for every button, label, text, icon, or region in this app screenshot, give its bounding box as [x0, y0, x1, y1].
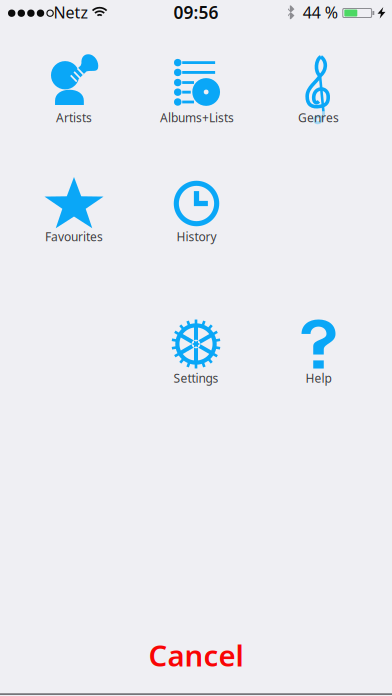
staticText: Genres: [298, 109, 339, 125]
button[interactable]: Settings: [135, 300, 257, 396]
button[interactable]: Genres: [257, 39, 379, 135]
staticText: History: [176, 228, 216, 244]
staticText: Artists: [56, 109, 92, 125]
button[interactable]: Favourites: [13, 158, 135, 254]
button[interactable]: Cancel: [0, 625, 392, 685]
staticText: Settings: [173, 370, 218, 386]
button[interactable]: Albums+Lists: [136, 39, 258, 135]
staticText: 09:56: [173, 1, 218, 24]
staticText: Favourites: [45, 228, 103, 244]
button[interactable]: Artists: [13, 39, 135, 135]
staticText: Cancel: [148, 635, 243, 674]
staticText: Netz: [53, 2, 88, 23]
button[interactable]: History: [135, 158, 257, 254]
staticText: 44 %: [303, 2, 338, 23]
button[interactable]: Help: [257, 300, 379, 396]
staticText: Help: [305, 370, 331, 386]
staticText: Albums+Lists: [160, 109, 234, 125]
